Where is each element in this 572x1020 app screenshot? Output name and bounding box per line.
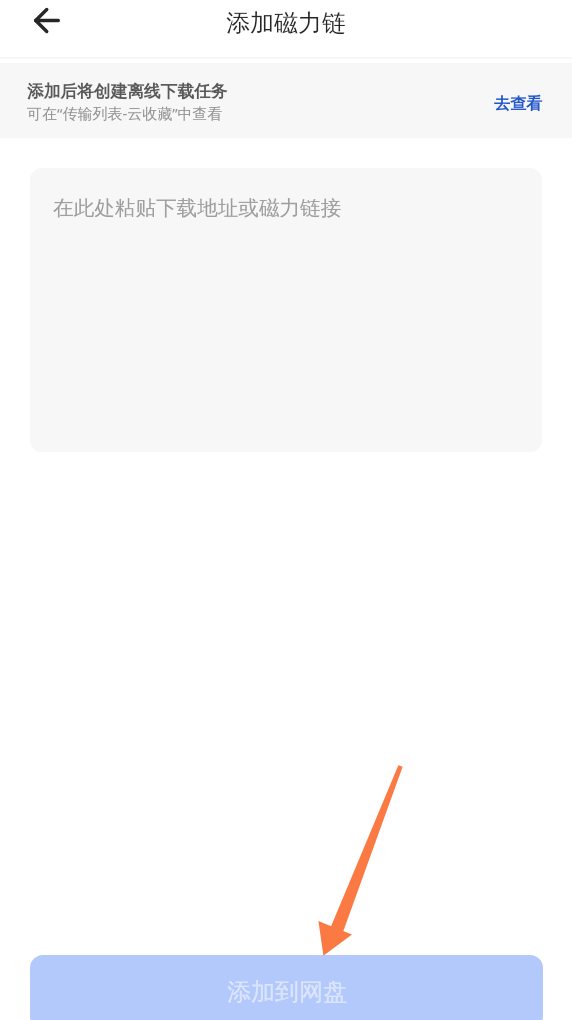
button[interactable]: 去查看 xyxy=(482,86,554,122)
staticText: 添加后将创建离线下载任务 xyxy=(27,81,228,102)
staticText: 可在“传输列表-云收藏”中查看 xyxy=(27,103,223,123)
staticText: 添加到网盘 xyxy=(227,977,347,1007)
staticText: 去查看 xyxy=(494,94,542,114)
staticText: 在此处粘贴下载地址或磁力链接 xyxy=(53,195,342,221)
staticText: 添加磁力链 xyxy=(226,8,346,38)
button[interactable]: Back xyxy=(25,0,69,40)
button[interactable]: 添加到网盘 xyxy=(30,955,543,1020)
button[interactable]: 在此处粘贴下载地址或磁力链接 xyxy=(30,168,542,452)
